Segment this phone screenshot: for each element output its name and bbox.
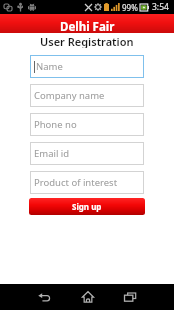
button[interactable]: Product of interest	[30, 171, 144, 194]
staticText: Phone no	[34, 118, 77, 131]
button[interactable]: Sign up	[29, 198, 145, 215]
staticText: 3:54	[152, 1, 169, 13]
staticText: 99%	[122, 2, 138, 13]
staticText: Email id	[34, 147, 70, 160]
button[interactable]: Phone no	[30, 113, 144, 136]
button[interactable]: Home	[66, 284, 109, 310]
button[interactable]: Recents	[109, 284, 152, 310]
button[interactable]: Back	[22, 284, 66, 310]
staticText: Name	[36, 60, 63, 73]
button[interactable]: Company name	[30, 84, 144, 107]
staticText: User Registration	[40, 34, 134, 48]
staticText: Company name	[34, 89, 105, 102]
button[interactable]: Email id	[30, 142, 144, 165]
staticText: Delhi Fair	[60, 19, 115, 35]
staticText: Product of interest	[34, 176, 118, 189]
staticText: Sign up	[72, 201, 102, 212]
button[interactable]: Name	[30, 55, 144, 78]
